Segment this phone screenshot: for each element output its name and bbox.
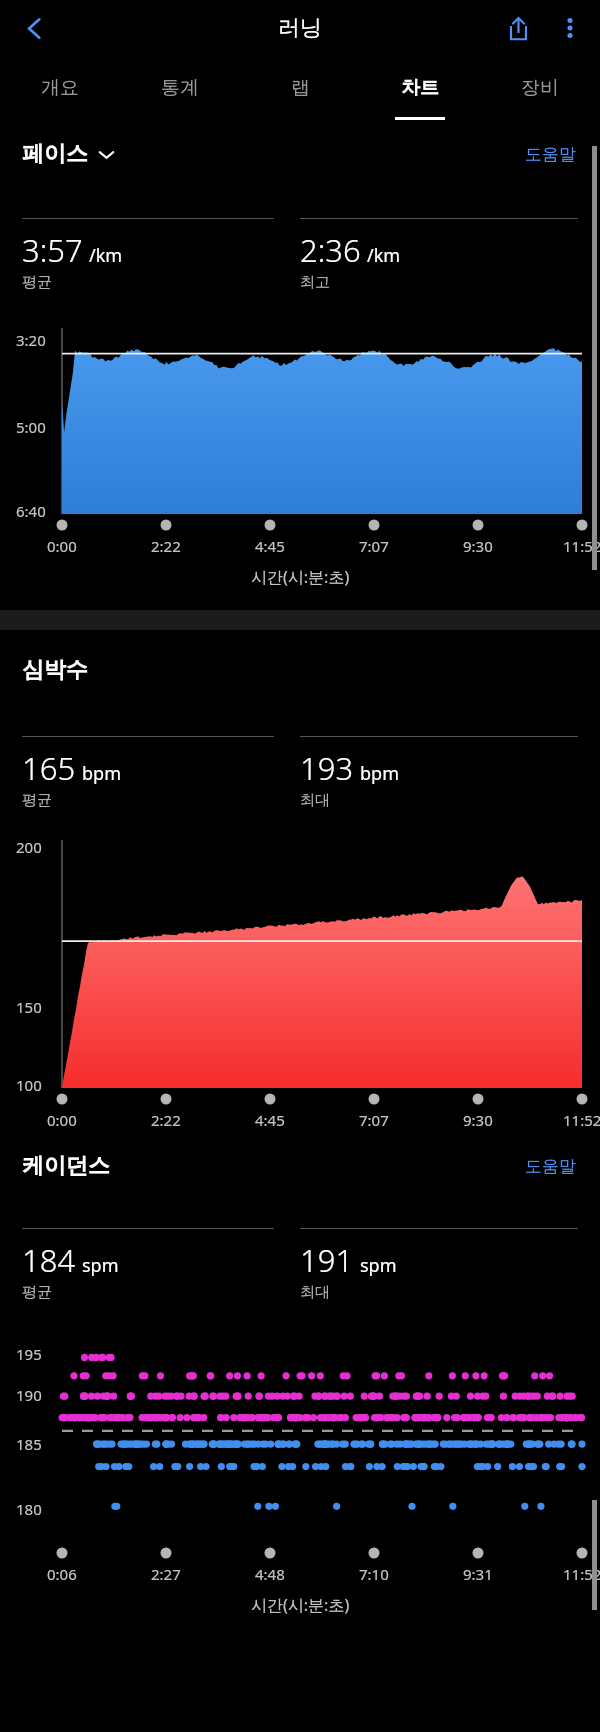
staticText: 9:30 [463, 536, 493, 556]
staticText: 0:00 [47, 1110, 77, 1130]
staticText: /km [89, 243, 123, 268]
staticText: 184 [22, 1239, 76, 1281]
button[interactable]: 도움말 [521, 140, 580, 169]
staticText: spm [360, 1253, 397, 1278]
staticText: bpm [82, 761, 121, 786]
staticText: 평균 [22, 791, 52, 810]
staticText: 6:40 [16, 501, 46, 521]
staticText: 4:45 [255, 1110, 285, 1130]
staticText: 191 [300, 1239, 354, 1281]
staticText: 193 [300, 747, 354, 789]
button[interactable]: 심박수 [22, 652, 88, 688]
staticText: 랩 [291, 76, 310, 100]
button[interactable]: 통계 [120, 56, 240, 128]
button[interactable]: 차트 [360, 56, 480, 128]
staticText: 7:07 [359, 536, 389, 556]
staticText: 7:10 [359, 1564, 389, 1584]
staticText: 도움말 [525, 144, 576, 165]
staticText: spm [82, 1253, 119, 1278]
staticText: 180 [16, 1499, 42, 1519]
staticText: 11:52 [563, 1564, 600, 1584]
staticText: /km [367, 243, 401, 268]
staticText: 2:22 [151, 1110, 181, 1130]
staticText: 최대 [300, 791, 330, 810]
button[interactable]: 랩 [240, 56, 360, 128]
staticText: 러닝 [278, 14, 322, 42]
staticText: 케이던스 [22, 1152, 110, 1180]
staticText: 0:00 [47, 536, 77, 556]
staticText: 평균 [22, 1283, 52, 1302]
staticText: 7:07 [359, 1110, 389, 1130]
button[interactable]: 케이던스 [22, 1148, 110, 1184]
button[interactable]: 개요 [0, 56, 120, 128]
staticText: 4:48 [255, 1564, 285, 1584]
staticText: 0:06 [47, 1564, 77, 1584]
staticText: 페이스 [22, 140, 88, 168]
staticText: 11:52 [563, 1110, 600, 1130]
staticText: 9:30 [463, 1110, 493, 1130]
staticText: 195 [16, 1344, 42, 1364]
staticText: 2:22 [151, 536, 181, 556]
staticText: 평균 [22, 273, 52, 292]
staticText: 시간(시:분:초) [251, 1594, 350, 1616]
staticText: 11:52 [563, 536, 600, 556]
button[interactable]: More options [544, 2, 596, 54]
staticText: 도움말 [525, 1156, 576, 1177]
staticText: 시간(시:분:초) [251, 566, 350, 588]
staticText: 190 [16, 1385, 42, 1405]
staticText: 185 [16, 1434, 42, 1454]
staticText: 3:20 [16, 330, 46, 350]
staticText: 최고 [300, 273, 330, 292]
staticText: 5:00 [16, 417, 46, 437]
staticText: 장비 [521, 76, 559, 100]
staticText: bpm [360, 761, 399, 786]
button[interactable]: Share [492, 2, 544, 54]
staticText: 2:36 [300, 229, 361, 271]
staticText: 9:31 [463, 1564, 493, 1584]
staticText: 차트 [401, 76, 439, 100]
staticText: 2:27 [151, 1564, 181, 1584]
button[interactable]: Back [8, 2, 60, 54]
button[interactable]: 페이스 [22, 136, 115, 172]
button[interactable]: 장비 [480, 56, 600, 128]
staticText: 개요 [41, 76, 79, 100]
staticText: 100 [16, 1075, 42, 1095]
staticText: 165 [22, 747, 76, 789]
button[interactable]: 도움말 [521, 1152, 580, 1181]
staticText: 3:57 [22, 229, 83, 271]
staticText: 최대 [300, 1283, 330, 1302]
staticText: 150 [16, 997, 42, 1017]
staticText: 통계 [161, 76, 199, 100]
staticText: 4:45 [255, 536, 285, 556]
staticText: 200 [16, 837, 42, 857]
staticText: 심박수 [22, 656, 88, 684]
